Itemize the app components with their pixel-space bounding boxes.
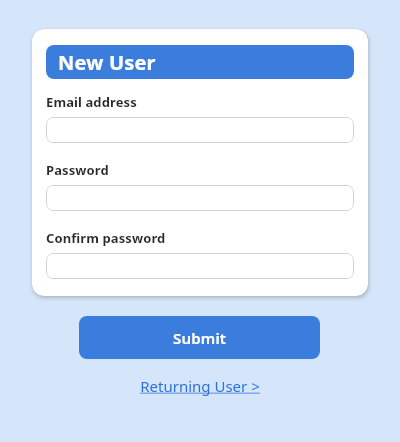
- button[interactable]: [46, 185, 354, 211]
- staticText: Email address: [46, 93, 137, 111]
- staticText: Confirm password: [46, 229, 166, 247]
- button[interactable]: New User: [46, 45, 354, 79]
- staticText: Submit: [173, 328, 227, 348]
- button[interactable]: [46, 253, 354, 279]
- button[interactable]: Returning User >: [136, 374, 264, 398]
- button[interactable]: Submit: [79, 316, 320, 359]
- staticText: Password: [46, 161, 109, 179]
- button[interactable]: [46, 117, 354, 143]
- staticText: Returning User >: [140, 376, 260, 396]
- staticText: New User: [58, 49, 156, 76]
